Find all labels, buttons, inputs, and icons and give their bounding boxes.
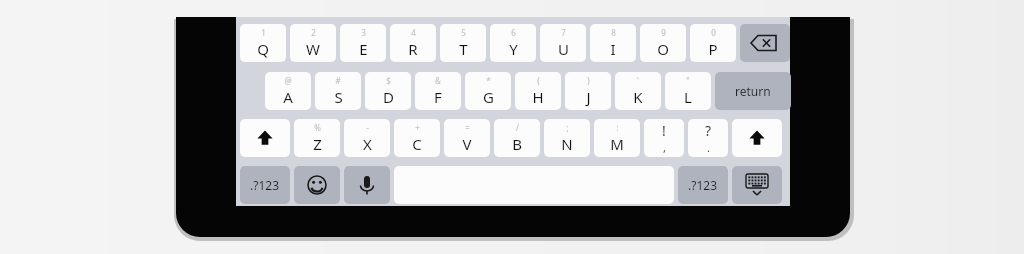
staticText: )	[587, 75, 590, 86]
button[interactable]: /	[494, 119, 540, 157]
staticText: A	[283, 87, 293, 107]
button[interactable]: !	[644, 119, 684, 157]
staticText: N	[561, 134, 573, 154]
staticText: G	[483, 87, 494, 107]
staticText: .?123	[688, 177, 718, 193]
button[interactable]: .?123	[240, 166, 290, 204]
button[interactable]: +	[394, 119, 440, 157]
button[interactable]: *	[465, 72, 511, 110]
staticText: C	[412, 134, 422, 154]
staticText: B	[512, 134, 522, 154]
button[interactable]: 4	[390, 24, 436, 62]
staticText: return	[735, 83, 771, 99]
staticText: W	[306, 39, 320, 59]
staticText: L	[684, 87, 692, 107]
staticText: O	[657, 39, 669, 59]
button[interactable]: 1	[240, 24, 286, 62]
staticText: .?123	[250, 177, 280, 193]
button[interactable]: 3	[340, 24, 386, 62]
button[interactable]: 0	[690, 24, 736, 62]
staticText: 6	[511, 27, 516, 38]
staticText: D	[383, 87, 394, 107]
staticText: (	[537, 75, 540, 86]
button[interactable]: 6	[490, 24, 536, 62]
staticText: *	[486, 75, 491, 86]
staticText: &	[435, 75, 441, 86]
staticText: I	[610, 39, 616, 59]
button[interactable]: 9	[640, 24, 686, 62]
staticText: 0	[711, 27, 716, 38]
button[interactable]: )	[565, 72, 611, 110]
button[interactable]: .?123	[678, 166, 728, 204]
staticText: @	[284, 75, 292, 86]
staticText: S	[334, 87, 343, 107]
button[interactable]: ;	[544, 119, 590, 157]
staticText: !	[662, 121, 666, 140]
staticText: 8	[611, 27, 616, 38]
button[interactable]: $	[365, 72, 411, 110]
staticText: J	[586, 87, 591, 107]
staticText: %	[314, 122, 321, 133]
staticText: "	[686, 75, 690, 86]
staticText: ;	[566, 122, 569, 133]
staticText: E	[359, 39, 368, 59]
staticText: Q	[257, 39, 269, 59]
staticText: 2	[311, 27, 316, 38]
staticText: /	[516, 122, 519, 133]
button[interactable]: Shift	[732, 119, 782, 157]
staticText: 5	[461, 27, 466, 38]
staticText: U	[558, 39, 569, 59]
staticText: =	[465, 122, 470, 133]
staticText: 9	[661, 27, 666, 38]
button[interactable]: 8	[590, 24, 636, 62]
staticText: '	[637, 75, 639, 86]
button[interactable]: :	[594, 119, 640, 157]
staticText: #	[335, 75, 341, 86]
button[interactable]: 5	[440, 24, 486, 62]
button[interactable]: return	[715, 72, 791, 110]
staticText: Z	[313, 134, 322, 154]
button[interactable]: @	[265, 72, 311, 110]
button[interactable]: Dictate	[344, 166, 390, 204]
staticText: .	[707, 140, 710, 155]
button[interactable]: 2	[290, 24, 336, 62]
staticText: -	[366, 122, 369, 133]
button[interactable]: ?	[688, 119, 728, 157]
staticText: K	[633, 87, 643, 107]
staticText: V	[462, 134, 472, 154]
staticText: F	[434, 87, 442, 107]
button[interactable]: #	[315, 72, 361, 110]
staticText: 7	[561, 27, 566, 38]
button[interactable]: Delete	[740, 24, 790, 62]
button[interactable]: Emoji	[294, 166, 340, 204]
button[interactable]: %	[294, 119, 340, 157]
staticText: 3	[361, 27, 366, 38]
staticText: Y	[509, 39, 518, 59]
button[interactable]: -	[344, 119, 390, 157]
staticText: T	[459, 39, 468, 59]
button[interactable]: Shift	[240, 119, 290, 157]
button[interactable]: 7	[540, 24, 586, 62]
button[interactable]: (	[515, 72, 561, 110]
staticText: 1	[261, 27, 266, 38]
button[interactable]: Hide keyboard	[732, 166, 782, 204]
button[interactable]: &	[415, 72, 461, 110]
button[interactable]: "	[665, 72, 711, 110]
staticText: P	[708, 39, 718, 59]
staticText: R	[408, 39, 418, 59]
button[interactable]: =	[444, 119, 490, 157]
staticText: 4	[411, 27, 416, 38]
staticText: :	[616, 122, 619, 133]
staticText: M	[610, 134, 624, 154]
staticText: X	[363, 134, 372, 154]
staticText: $	[386, 75, 391, 86]
button[interactable]: '	[615, 72, 661, 110]
staticText: H	[532, 87, 544, 107]
staticText: ,	[663, 140, 666, 155]
staticText: ?	[705, 121, 712, 140]
staticText: +	[415, 122, 420, 133]
